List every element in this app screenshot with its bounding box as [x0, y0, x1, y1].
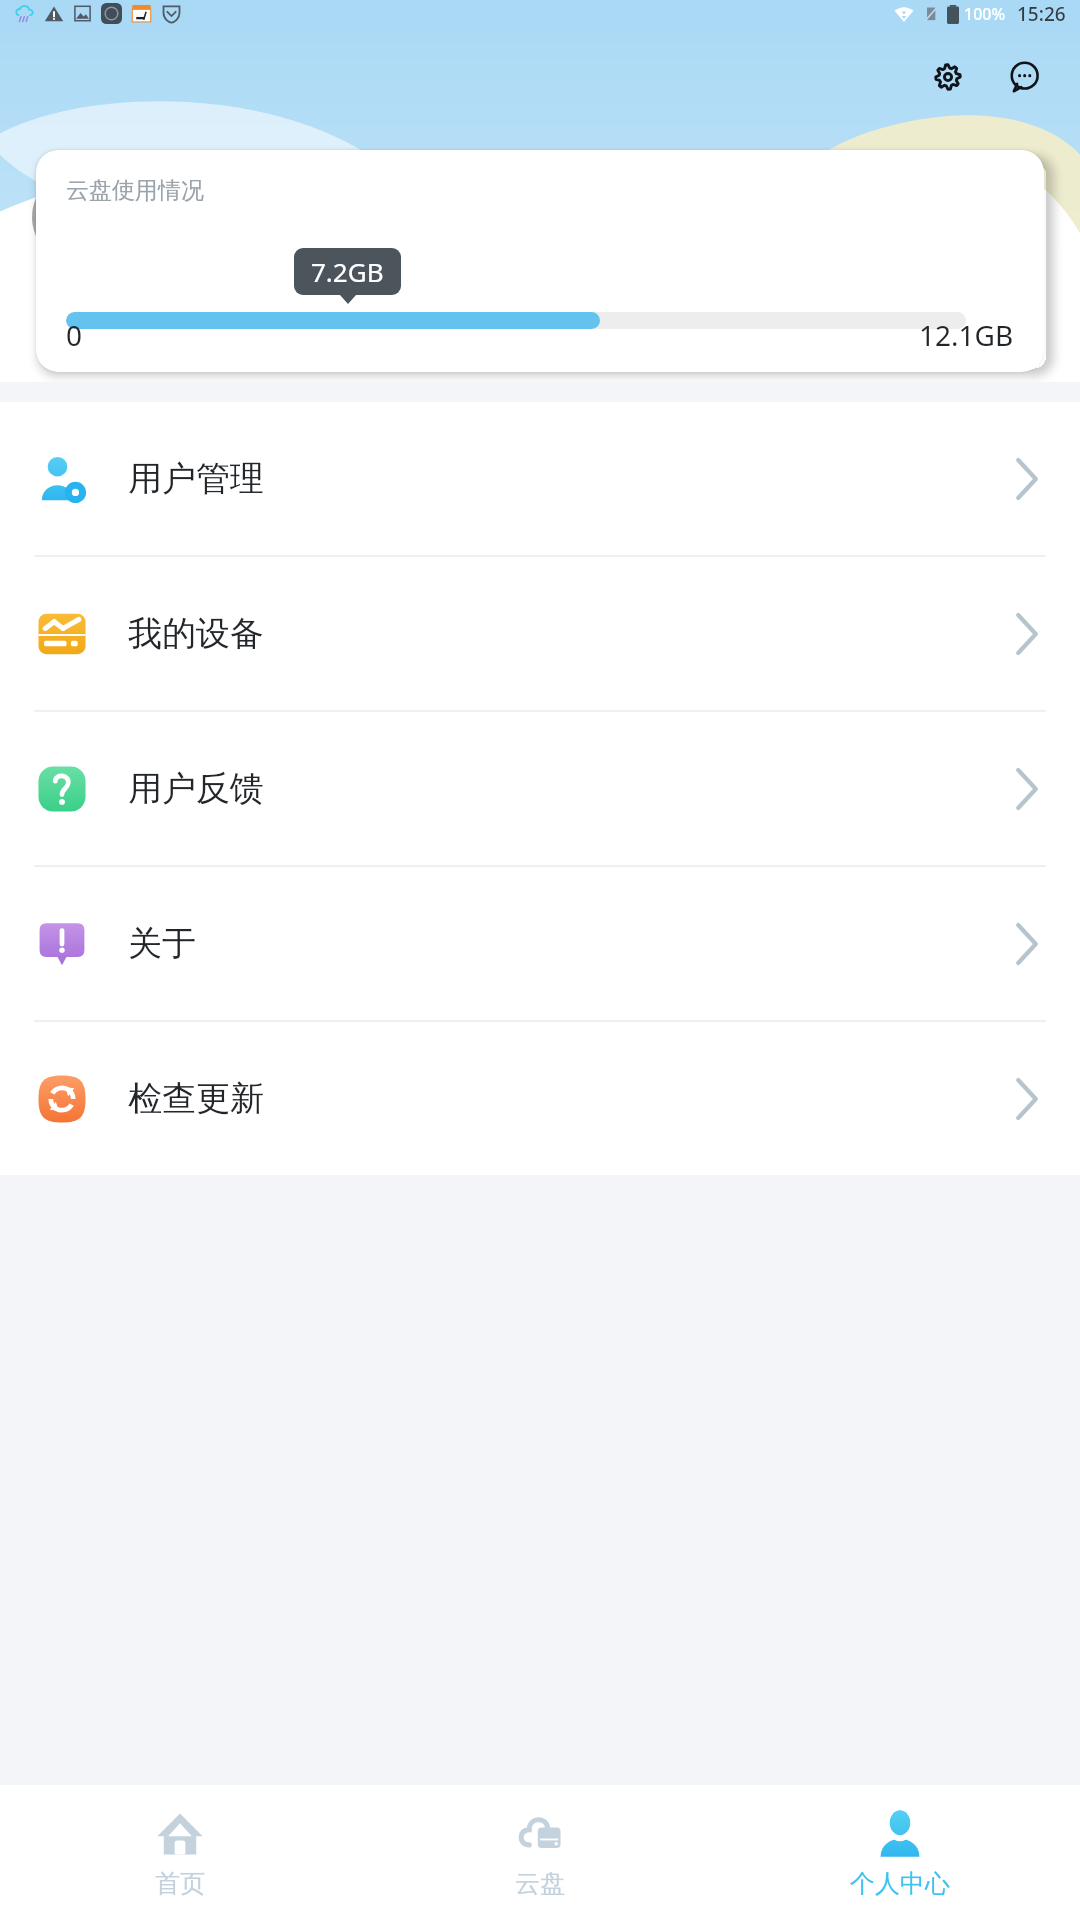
button[interactable]: 用户反馈 — [0, 712, 1080, 865]
button[interactable] — [32, 169, 128, 265]
button[interactable]: 云盘 — [360, 1785, 720, 1920]
button[interactable]: 关于 — [0, 867, 1080, 1020]
staticText: 15:26 — [1017, 1, 1066, 27]
button[interactable]: Messages — [998, 51, 1050, 103]
staticText: 个人中心 — [850, 1868, 950, 1899]
staticText: 12.1GB — [919, 316, 1014, 354]
staticText: 未设置昵称1565… — [156, 176, 399, 217]
staticText: 云盘使用情况 — [66, 176, 204, 205]
staticText: 100% — [964, 3, 1006, 25]
staticText: 用户管理 — [128, 457, 264, 500]
button[interactable]: 云盘使用情况 — [36, 150, 1044, 372]
button[interactable]: 用户管理 — [0, 402, 1080, 555]
staticText: 检查更新 — [128, 1077, 264, 1120]
button[interactable]: 首页 — [0, 1785, 360, 1920]
button[interactable]: Settings — [922, 51, 974, 103]
button[interactable]: 个人中心 — [720, 1785, 1080, 1920]
staticText: 0 — [66, 316, 83, 354]
staticText: 用户反馈 — [128, 767, 264, 810]
staticText: 首页 — [155, 1868, 205, 1899]
button[interactable]: 我的设备 — [0, 557, 1080, 710]
staticText: 我的设备 — [128, 612, 264, 655]
staticText: 15656565656 — [156, 227, 301, 258]
staticText: 云盘 — [515, 1868, 565, 1899]
staticText: 关于 — [128, 922, 196, 965]
button[interactable]: 检查更新 — [0, 1022, 1080, 1175]
staticText: 7.2GB — [311, 254, 384, 289]
